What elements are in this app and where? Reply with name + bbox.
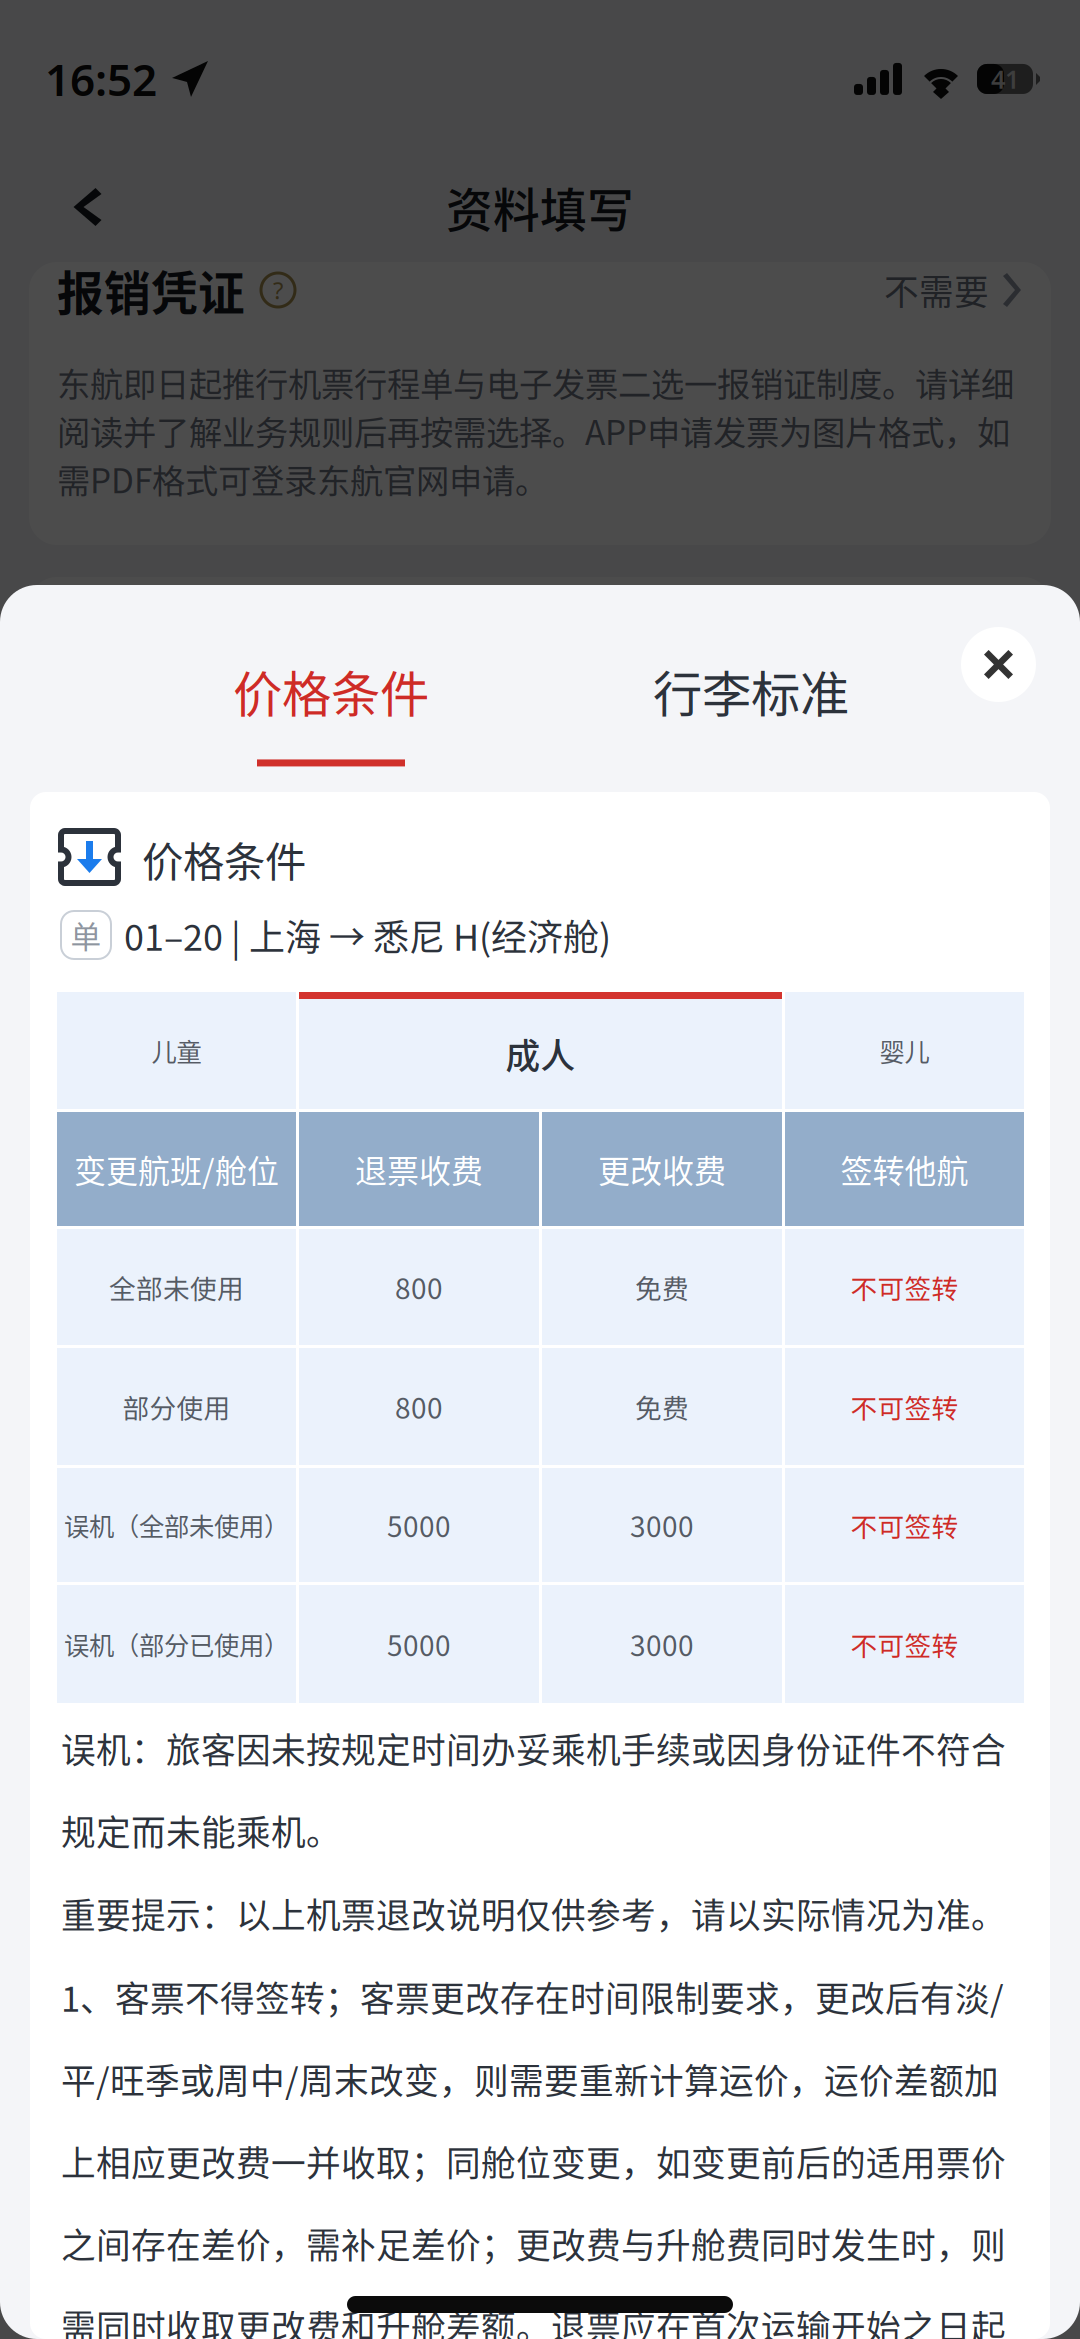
staticText: 3000 (630, 1505, 694, 1545)
staticText: 全部未使用 (109, 1268, 244, 1306)
staticText: 5000 (387, 1505, 451, 1545)
staticText: 不可签转 (850, 1268, 958, 1306)
staticText: 不需要 (884, 265, 989, 315)
staticText: 行李标准 (653, 655, 849, 726)
staticText: 不可签转 (850, 1387, 958, 1426)
staticText: 价格条件 (233, 655, 429, 726)
button[interactable]: 行李标准 (648, 585, 854, 792)
staticText: 16:52 (45, 49, 157, 109)
staticText: 误机：旅客因未按规定时间办妥乘机手续或因身份证件不符合规定而未能乘机。 (61, 1723, 1006, 1855)
staticText: 不可签转 (850, 1506, 958, 1544)
staticText: 价格条件 (142, 829, 306, 889)
button[interactable]: 价格条件 (228, 585, 434, 792)
staticText: 01–20 | 上海 → 悉尼 H(经济舱) (124, 909, 611, 961)
staticText: 误机（全部未使用） (64, 1507, 289, 1543)
staticText: 退票收费 (355, 1146, 483, 1192)
staticText: 单 (70, 913, 101, 957)
staticText: ? (273, 274, 283, 306)
staticText: 资料填写 (446, 173, 634, 241)
staticText: 800 (395, 1267, 443, 1307)
staticText: 3000 (630, 1624, 694, 1664)
button[interactable]: 返回 (52, 171, 123, 242)
staticText: 41 (991, 62, 1019, 96)
staticText: 重要提示：以上机票退改说明仅供参考，请以实际情况为准。 (61, 1888, 1006, 1939)
staticText: 签转他航 (840, 1146, 968, 1192)
staticText: 误机（部分已使用） (64, 1626, 289, 1662)
staticText: 免费 (635, 1387, 689, 1426)
staticText: 报销凭证 (57, 256, 245, 324)
staticText: 变更航班/舱位 (74, 1146, 279, 1192)
staticText: 东航即日起推行机票行程单与电子发票二选一报销证制度。请详细阅读并了解业务规则后再… (57, 358, 1014, 503)
staticText: 部分使用 (122, 1387, 230, 1426)
button[interactable]: 关闭 (961, 627, 1036, 702)
staticText: 婴儿 (879, 1032, 929, 1069)
staticText: 儿童 (151, 1032, 201, 1069)
staticText: 免费 (635, 1268, 689, 1306)
staticText: 成人 (505, 1029, 575, 1079)
staticText: 更改收费 (598, 1146, 726, 1192)
staticText: 5000 (387, 1624, 451, 1664)
staticText: 不可签转 (850, 1625, 958, 1663)
staticText: 800 (395, 1386, 443, 1427)
staticText: 1、客票不得签转；客票更改存在时间限制要求，更改后有淡/平/旺季或周中/周末改变… (61, 1972, 1006, 2339)
